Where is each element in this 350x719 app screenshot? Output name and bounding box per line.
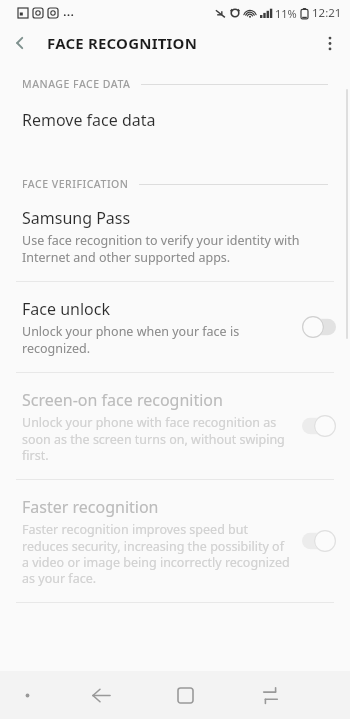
button[interactable]: Hide navigation bar bbox=[14, 682, 40, 708]
staticText: Use face recognition to verify your iden… bbox=[22, 232, 328, 265]
button[interactable]: Face unlock bbox=[0, 282, 350, 372]
button[interactable]: Remove face data bbox=[0, 91, 350, 151]
staticText: Remove face data bbox=[22, 109, 156, 131]
staticText: Faster recognition bbox=[22, 496, 159, 518]
button[interactable]: Recents bbox=[246, 671, 294, 719]
button[interactable]: Faster recognition bbox=[0, 480, 350, 602]
button[interactable]: Samsung Pass bbox=[0, 191, 350, 281]
staticText: Screen-on face recognition bbox=[22, 389, 223, 411]
staticText: Faster recognition improves speed but re… bbox=[22, 521, 292, 586]
button[interactable]: Screen-on face recognition bbox=[0, 373, 350, 479]
staticText: Unlock your phone with face recognition … bbox=[22, 414, 292, 463]
staticText: Unlock your phone when your face is reco… bbox=[22, 323, 292, 356]
staticText: 11% bbox=[275, 6, 297, 21]
button[interactable]: More options bbox=[310, 25, 350, 61]
staticText: Samsung Pass bbox=[22, 207, 131, 229]
staticText: 12:21 bbox=[312, 5, 342, 21]
button[interactable]: Home bbox=[161, 671, 209, 719]
staticText: FACE RECOGNITION bbox=[47, 33, 198, 53]
button[interactable]: Back bbox=[77, 671, 125, 719]
staticText: Face unlock bbox=[22, 298, 110, 320]
staticText: FACE VERIFICATION bbox=[22, 177, 129, 191]
staticText: MANAGE FACE DATA bbox=[22, 77, 131, 91]
button[interactable]: Back bbox=[0, 25, 40, 61]
